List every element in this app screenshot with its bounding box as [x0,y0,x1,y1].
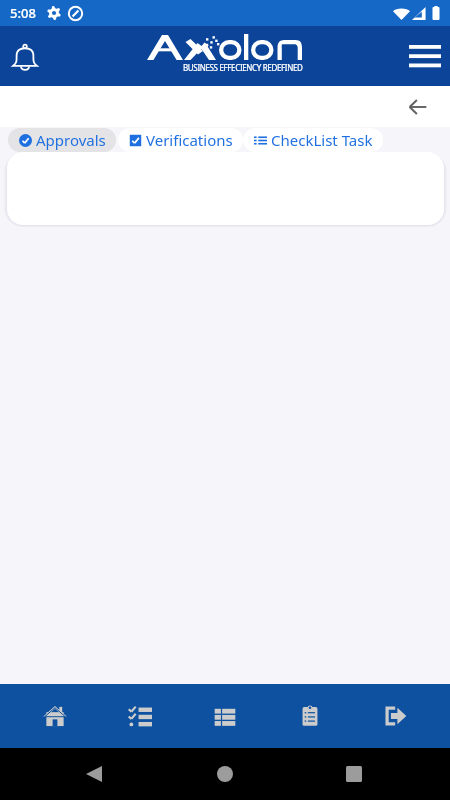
button[interactable]: Approvals [8,128,116,152]
button[interactable]: Menu [403,34,447,78]
staticText: Verifications [146,130,233,150]
button[interactable]: CheckList Task [243,128,383,152]
staticText: CheckList Task [271,130,373,150]
button[interactable]: Home [25,686,85,746]
button[interactable]: Verifications [118,128,243,152]
button[interactable]: Notifications [3,34,47,78]
staticText: 5:08 [10,4,36,22]
button[interactable]: Home [201,750,249,798]
staticText: Approvals [36,130,106,150]
button[interactable]: Recents [330,750,378,798]
button[interactable]: Back [404,93,432,121]
button[interactable]: Back [70,750,118,798]
button[interactable]: Reports [280,686,340,746]
button[interactable]: Tasks [110,686,170,746]
button[interactable]: Logout [365,686,425,746]
staticText: BUSINESS EFFECIENCY REDEFINED [183,62,303,73]
button[interactable]: Table [195,686,255,746]
